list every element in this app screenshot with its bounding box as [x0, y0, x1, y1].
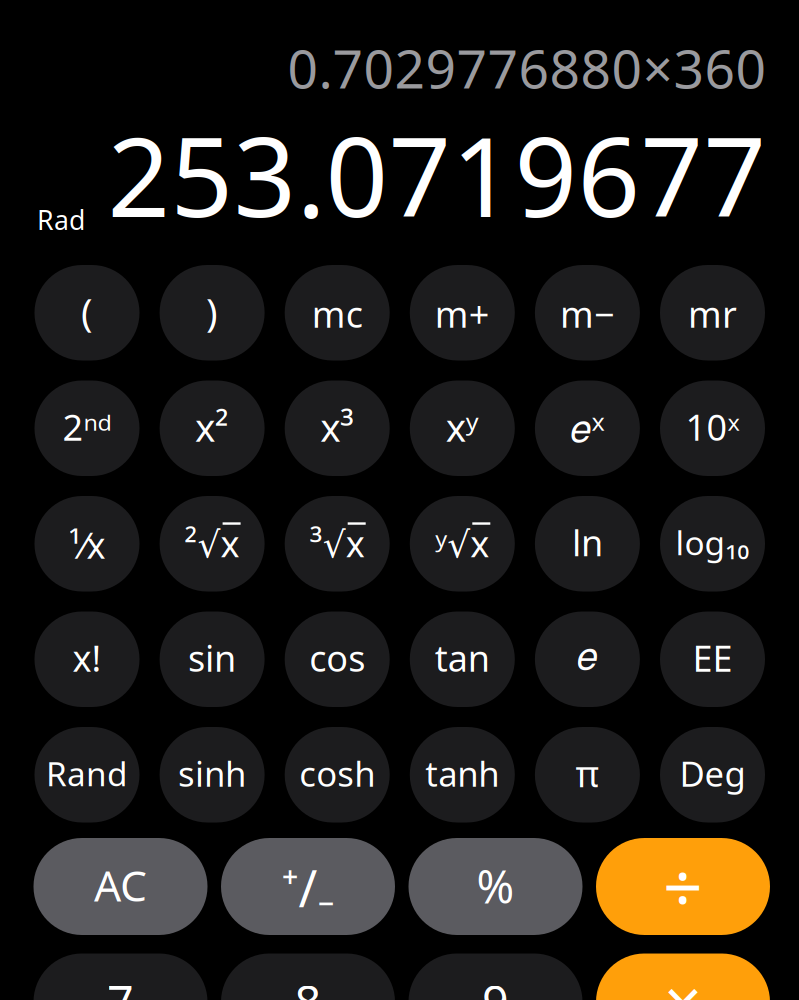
staticText: m− — [560, 290, 615, 338]
button[interactable]: m+ — [410, 265, 515, 360]
staticText: ÷ — [663, 839, 703, 932]
staticText: √x — [323, 519, 365, 567]
staticText: tan — [435, 634, 490, 682]
button[interactable]: cosh — [285, 727, 390, 822]
staticText: ( — [81, 286, 93, 337]
button[interactable]: ln — [535, 496, 640, 591]
button[interactable]: tanh — [410, 727, 515, 822]
staticText: 8 — [294, 971, 321, 1000]
button[interactable]: mc — [285, 265, 390, 360]
staticText: x! — [72, 634, 101, 682]
staticText: mr — [688, 290, 737, 338]
staticText: tanh — [425, 750, 499, 796]
button[interactable]: ³ — [285, 496, 390, 591]
button[interactable]: m− — [535, 265, 640, 360]
button[interactable]: sin — [160, 611, 265, 707]
staticText: % — [476, 856, 514, 916]
staticText: cos — [309, 634, 365, 682]
button[interactable]: ʸ — [410, 496, 515, 591]
staticText: 10ˣ — [685, 403, 739, 451]
button[interactable]: ¹⁄x — [34, 496, 139, 591]
button[interactable]: 8 — [221, 953, 395, 1000]
staticText: 9 — [482, 971, 509, 1000]
staticText: m+ — [435, 290, 490, 338]
button[interactable]: log₁₀ — [660, 496, 765, 591]
staticText: √x — [198, 519, 240, 567]
button[interactable]: 𝑒ˣ — [535, 380, 640, 476]
staticText: 7 — [107, 971, 134, 1000]
button[interactable]: sinh — [160, 727, 265, 822]
staticText: √x — [447, 519, 489, 567]
staticText: Rand — [46, 751, 128, 795]
staticText: ) — [206, 286, 218, 337]
button[interactable]: Rad — [37, 202, 85, 237]
button[interactable]: xʸ — [410, 380, 515, 476]
button[interactable]: ) — [160, 265, 265, 360]
button[interactable]: EE — [660, 611, 765, 707]
button[interactable]: ÷ — [596, 838, 770, 935]
staticText: sin — [188, 634, 236, 682]
button[interactable]: x³ — [285, 380, 390, 476]
button[interactable]: × — [596, 953, 770, 1000]
button[interactable]: Deg — [660, 727, 765, 822]
staticText: ¹⁄x — [68, 521, 105, 569]
button[interactable]: 9 — [408, 953, 582, 1000]
staticText: 𝑒ˣ — [570, 401, 604, 452]
staticText: x² — [195, 401, 229, 452]
staticText: × — [664, 958, 702, 1000]
button[interactable]: x! — [34, 611, 139, 707]
button[interactable]: ² — [160, 496, 265, 591]
staticText: x³ — [320, 401, 354, 452]
staticText: π — [575, 749, 599, 797]
button[interactable]: π — [535, 727, 640, 822]
staticText: log₁₀ — [675, 520, 749, 564]
staticText: ʸ — [435, 519, 447, 567]
staticText: EE — [692, 634, 732, 682]
staticText: ⁺/₋ — [281, 854, 334, 921]
staticText: 𝑒 — [577, 639, 598, 677]
staticText: Rad — [37, 202, 85, 237]
staticText: ³ — [310, 519, 323, 567]
button[interactable]: 10ˣ — [660, 380, 765, 476]
staticText: 0.7029776880×360 — [288, 32, 767, 103]
staticText: ln — [572, 518, 603, 566]
staticText: 2ⁿᵈ — [62, 403, 111, 451]
staticText: AC — [94, 857, 147, 913]
button[interactable]: 7 — [33, 953, 207, 1000]
button[interactable]: 𝑒 — [535, 611, 640, 707]
button[interactable]: x² — [160, 380, 265, 476]
button[interactable]: ⁺/₋ — [221, 838, 395, 935]
staticText: 253.0719677 — [107, 102, 766, 247]
staticText: Deg — [679, 750, 745, 796]
staticText: sinh — [178, 750, 246, 796]
button[interactable]: Rand — [34, 727, 139, 822]
button[interactable]: mr — [660, 265, 765, 360]
button[interactable]: tan — [410, 611, 515, 707]
button[interactable]: AC — [33, 838, 207, 935]
button[interactable]: % — [408, 838, 582, 935]
staticText: mc — [312, 290, 363, 338]
button[interactable]: 2ⁿᵈ — [34, 380, 139, 476]
button[interactable]: cos — [285, 611, 390, 707]
staticText: xʸ — [446, 401, 479, 452]
staticText: cosh — [299, 750, 375, 796]
button[interactable]: ( — [34, 265, 139, 360]
staticText: ² — [185, 519, 198, 567]
